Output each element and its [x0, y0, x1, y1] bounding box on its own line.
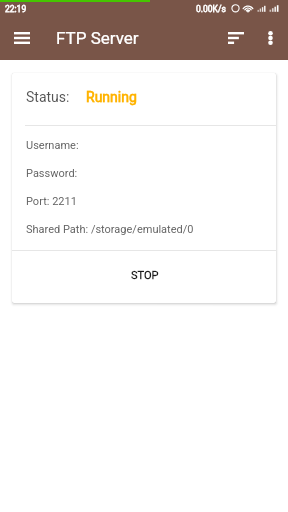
staticText: Port: 2211 — [26, 195, 77, 208]
staticText: Username: — [26, 139, 79, 152]
button[interactable]: More options — [252, 20, 288, 56]
button[interactable]: STOP — [12, 251, 276, 303]
button[interactable]: Open navigation drawer — [4, 20, 40, 56]
staticText: Running — [86, 89, 137, 105]
staticText: 0.00K/s — [196, 4, 226, 14]
staticText: FTP Server — [56, 28, 139, 48]
staticText: Shared Path: /storage/emulated/0 — [26, 223, 194, 236]
staticText: 22:19 — [5, 4, 27, 14]
staticText: STOP — [131, 269, 159, 282]
button[interactable]: Sort — [218, 20, 254, 56]
staticText: Password: — [26, 167, 78, 180]
staticText: Status: — [26, 89, 70, 105]
